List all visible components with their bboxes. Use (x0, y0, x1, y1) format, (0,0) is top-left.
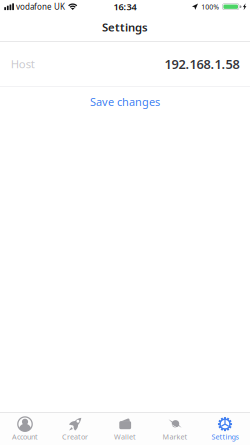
staticText: Account (12, 432, 38, 441)
staticText: Save changes (90, 94, 160, 109)
staticText: Wallet (114, 432, 136, 441)
staticText: Market (162, 432, 187, 441)
button[interactable]: Account (0, 413, 50, 445)
staticText: Creator (62, 432, 88, 441)
button[interactable]: Market (150, 413, 200, 445)
button[interactable]: Wallet (100, 413, 150, 445)
button[interactable]: Creator (50, 413, 100, 445)
staticText: Settings (211, 432, 238, 441)
staticText: 16:34 (113, 1, 136, 13)
staticText: Host (11, 56, 35, 71)
button[interactable]: Save changes (0, 87, 250, 116)
button[interactable]: Settings (200, 413, 250, 445)
staticText: Settings (102, 20, 148, 35)
staticText: 192.168.1.58 (164, 55, 239, 72)
staticText: vodafone UK (16, 1, 65, 12)
staticText: 100% (201, 2, 219, 11)
